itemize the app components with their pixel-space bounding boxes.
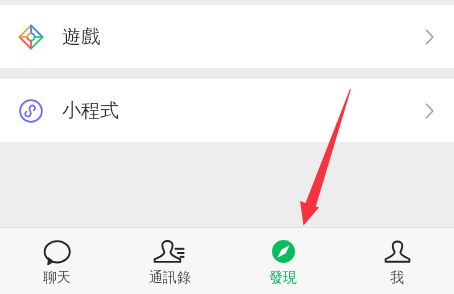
staticText: 聊天	[43, 269, 71, 287]
staticText: 發現	[269, 269, 297, 287]
button[interactable]: 小程式	[0, 79, 454, 142]
staticText: 我	[390, 269, 404, 287]
button[interactable]: 遊戲	[0, 5, 454, 68]
staticText: 通訊錄	[149, 269, 191, 287]
button[interactable]: Chat	[0, 228, 113, 294]
button[interactable]: Me	[340, 228, 454, 294]
button[interactable]: Contacts	[113, 228, 226, 294]
staticText: 小程式	[62, 99, 119, 123]
button[interactable]: Discover	[226, 228, 340, 294]
staticText: 遊戲	[62, 25, 100, 49]
